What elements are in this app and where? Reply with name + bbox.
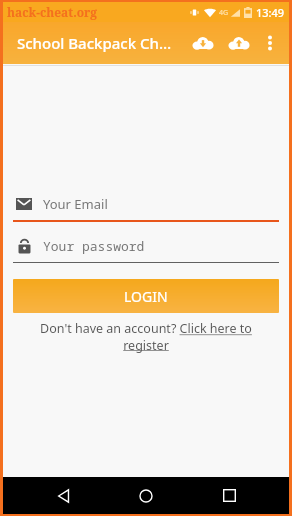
button[interactable]: Don't have an account? Click here to reg… bbox=[23, 320, 269, 353]
staticText: Your Email bbox=[43, 195, 108, 213]
staticText: 13:49 bbox=[256, 5, 285, 20]
button[interactable]: LOGIN bbox=[13, 279, 279, 313]
button[interactable]: Your Email bbox=[13, 193, 279, 222]
staticText: LOGIN bbox=[124, 287, 168, 306]
button[interactable]: Upload bbox=[221, 25, 257, 61]
button[interactable]: Download bbox=[185, 25, 221, 61]
button[interactable]: More options bbox=[257, 30, 283, 56]
staticText: School Backpack Ch… bbox=[17, 33, 172, 53]
staticText: hack-cheat.org bbox=[7, 4, 98, 20]
staticText: 4G bbox=[219, 8, 229, 18]
button[interactable]: Recent apps bbox=[207, 477, 251, 514]
staticText: Your password bbox=[43, 237, 145, 255]
button[interactable]: Home bbox=[124, 477, 168, 514]
button[interactable]: Back bbox=[42, 477, 86, 514]
staticText: Don't have an account? Click here to reg… bbox=[23, 320, 269, 353]
button[interactable]: Your password bbox=[13, 235, 279, 263]
